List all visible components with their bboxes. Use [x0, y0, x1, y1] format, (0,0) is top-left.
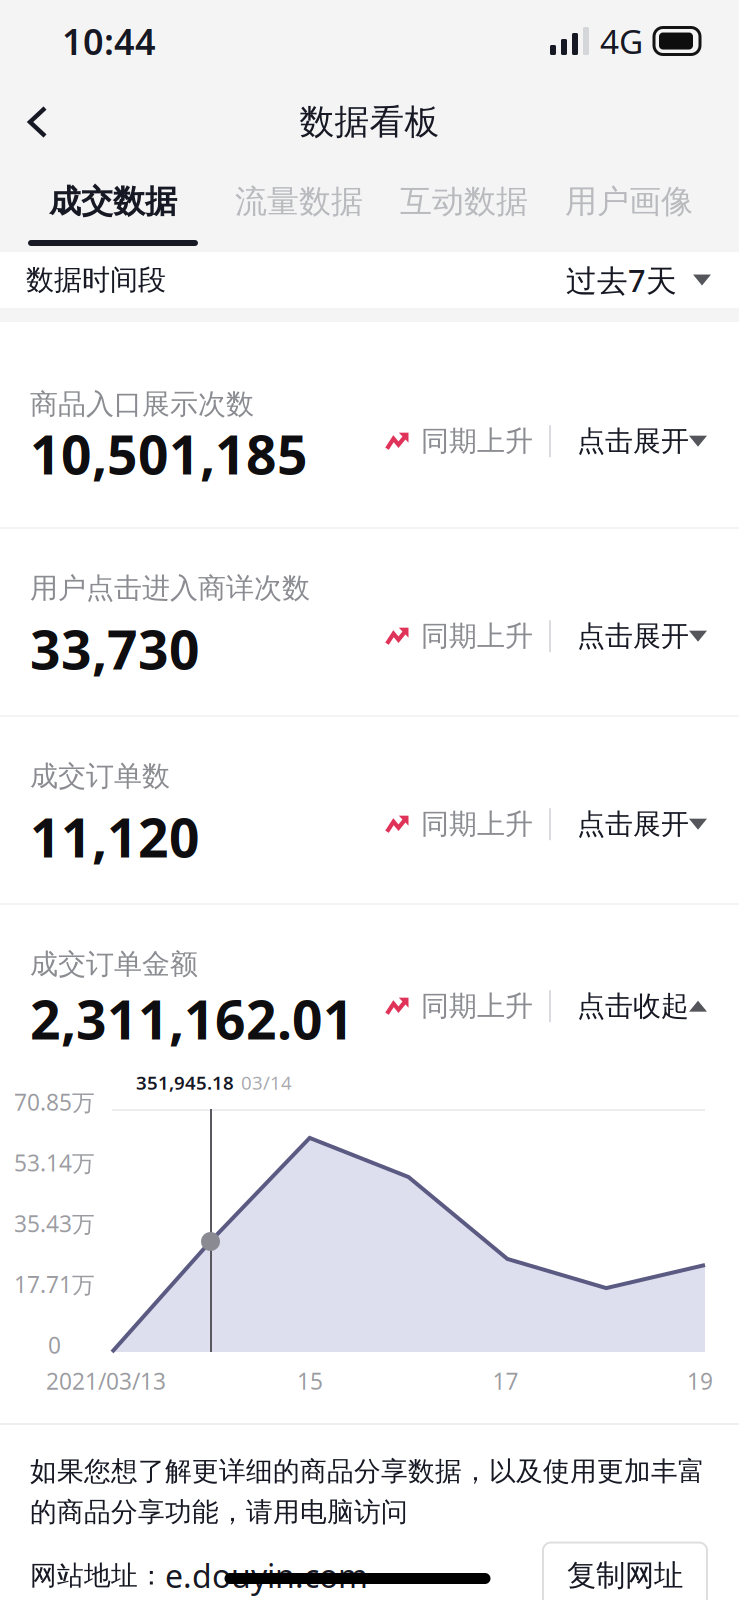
- staticText: 互动数据: [400, 182, 528, 221]
- staticText: 351,945.18: [136, 1070, 234, 1095]
- staticText: 2,311,162.01: [30, 983, 354, 1054]
- staticText: 流量数据: [235, 182, 363, 221]
- staticText: 成交数据: [49, 182, 177, 221]
- button[interactable]: 数据时间段: [0, 252, 739, 308]
- button[interactable]: 点击展开: [551, 797, 706, 851]
- staticText: 17: [492, 1366, 518, 1396]
- button[interactable]: 用户画像: [565, 162, 693, 252]
- staticText: 成交订单金额: [30, 947, 198, 981]
- staticText: 2021/03/13: [46, 1366, 166, 1396]
- button[interactable]: 流量数据: [235, 162, 363, 252]
- button[interactable]: Back: [0, 93, 74, 151]
- staticText: 同期上升: [421, 989, 533, 1023]
- staticText: 网站地址：: [30, 1559, 165, 1592]
- button[interactable]: 点击展开: [551, 609, 706, 663]
- staticText: 4G: [600, 19, 643, 63]
- staticText: 同期上升: [421, 424, 533, 458]
- staticText: 53.14万: [14, 1148, 95, 1178]
- button[interactable]: 点击展开: [551, 414, 706, 468]
- staticText: 同期上升: [421, 619, 533, 653]
- staticText: 点击收起: [577, 989, 689, 1023]
- staticText: 复制网址: [567, 1557, 683, 1593]
- button[interactable]: 复制网址: [543, 1542, 707, 1600]
- staticText: 过去7天: [566, 260, 677, 300]
- staticText: 19: [687, 1366, 713, 1396]
- staticText: 33,730: [30, 613, 200, 684]
- staticText: 商品入口展示次数: [30, 387, 254, 421]
- staticText: 数据时间段: [26, 263, 166, 297]
- staticText: 0: [48, 1330, 61, 1360]
- staticText: 点击展开: [577, 807, 689, 841]
- staticText: 同期上升: [421, 807, 533, 841]
- staticText: 70.85万: [14, 1087, 95, 1117]
- button[interactable]: 互动数据: [400, 162, 528, 252]
- button[interactable]: 点击收起: [551, 979, 706, 1033]
- staticText: 15: [297, 1366, 323, 1396]
- staticText: 的商品分享功能，请用电脑访问: [30, 1496, 408, 1529]
- staticText: 17.71万: [14, 1269, 95, 1299]
- staticText: 点击展开: [577, 424, 689, 458]
- staticText: 数据看板: [299, 101, 439, 143]
- staticText: 用户点击进入商详次数: [30, 571, 310, 605]
- button[interactable]: 成交数据: [28, 162, 198, 252]
- staticText: 点击展开: [577, 619, 689, 653]
- staticText: 如果您想了解更详细的商品分享数据，以及使用更加丰富: [30, 1455, 705, 1488]
- staticText: e.douyin.com: [165, 1554, 368, 1597]
- staticText: 用户画像: [565, 182, 693, 221]
- staticText: 成交订单数: [30, 759, 170, 793]
- staticText: 10,501,185: [30, 418, 308, 489]
- staticText: 10:44: [62, 17, 156, 65]
- staticText: 03/14: [241, 1070, 292, 1095]
- staticText: 11,120: [30, 801, 200, 872]
- staticText: 35.43万: [14, 1208, 95, 1238]
